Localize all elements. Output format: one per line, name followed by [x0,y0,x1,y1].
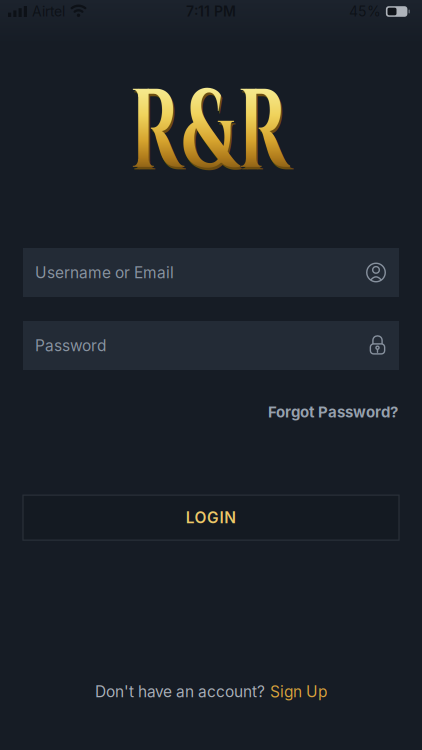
staticText: Username or Email [35,263,174,282]
staticText: R&R [85,62,338,210]
button[interactable]: Username or Email [0,248,422,297]
staticText: 45% [349,3,381,20]
staticText: 7:11 PM [186,3,236,20]
staticText: LOGIN [186,508,236,527]
button[interactable]: LOGIN [0,495,422,540]
staticText: Password [35,336,106,355]
staticText: Don't have an account? [95,682,265,701]
button[interactable]: Password [0,321,422,370]
staticText: Airtel [32,3,65,20]
staticText: Forgot Password? [268,403,398,421]
button[interactable]: Forgot Password? [268,403,398,421]
staticText: Sign Up [270,682,327,701]
button[interactable]: Sign Up [270,682,327,701]
